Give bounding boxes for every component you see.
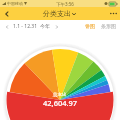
staticText: 42,604.97 — [43, 98, 78, 108]
button[interactable]: Back — [0, 7, 13, 20]
staticText: 1.1 - 12.31 — [13, 23, 38, 30]
staticText: 下午3:56 — [56, 1, 74, 7]
button[interactable]: More options — [107, 7, 120, 20]
button[interactable]: 条形图 — [100, 21, 117, 31]
staticText: 分类支出 — [43, 9, 71, 18]
button[interactable]: Previous period — [2, 22, 11, 31]
button[interactable]: 饼图 — [84, 21, 96, 31]
button[interactable]: Next period — [52, 22, 61, 31]
staticText: 饼图 — [85, 23, 95, 29]
button[interactable]: 分类支出 — [43, 9, 76, 18]
staticText: 中国移动 — [7, 1, 23, 6]
staticText: 总支出 — [53, 92, 67, 98]
staticText: 今年 — [40, 23, 50, 29]
staticText: 条形图 — [101, 23, 116, 29]
